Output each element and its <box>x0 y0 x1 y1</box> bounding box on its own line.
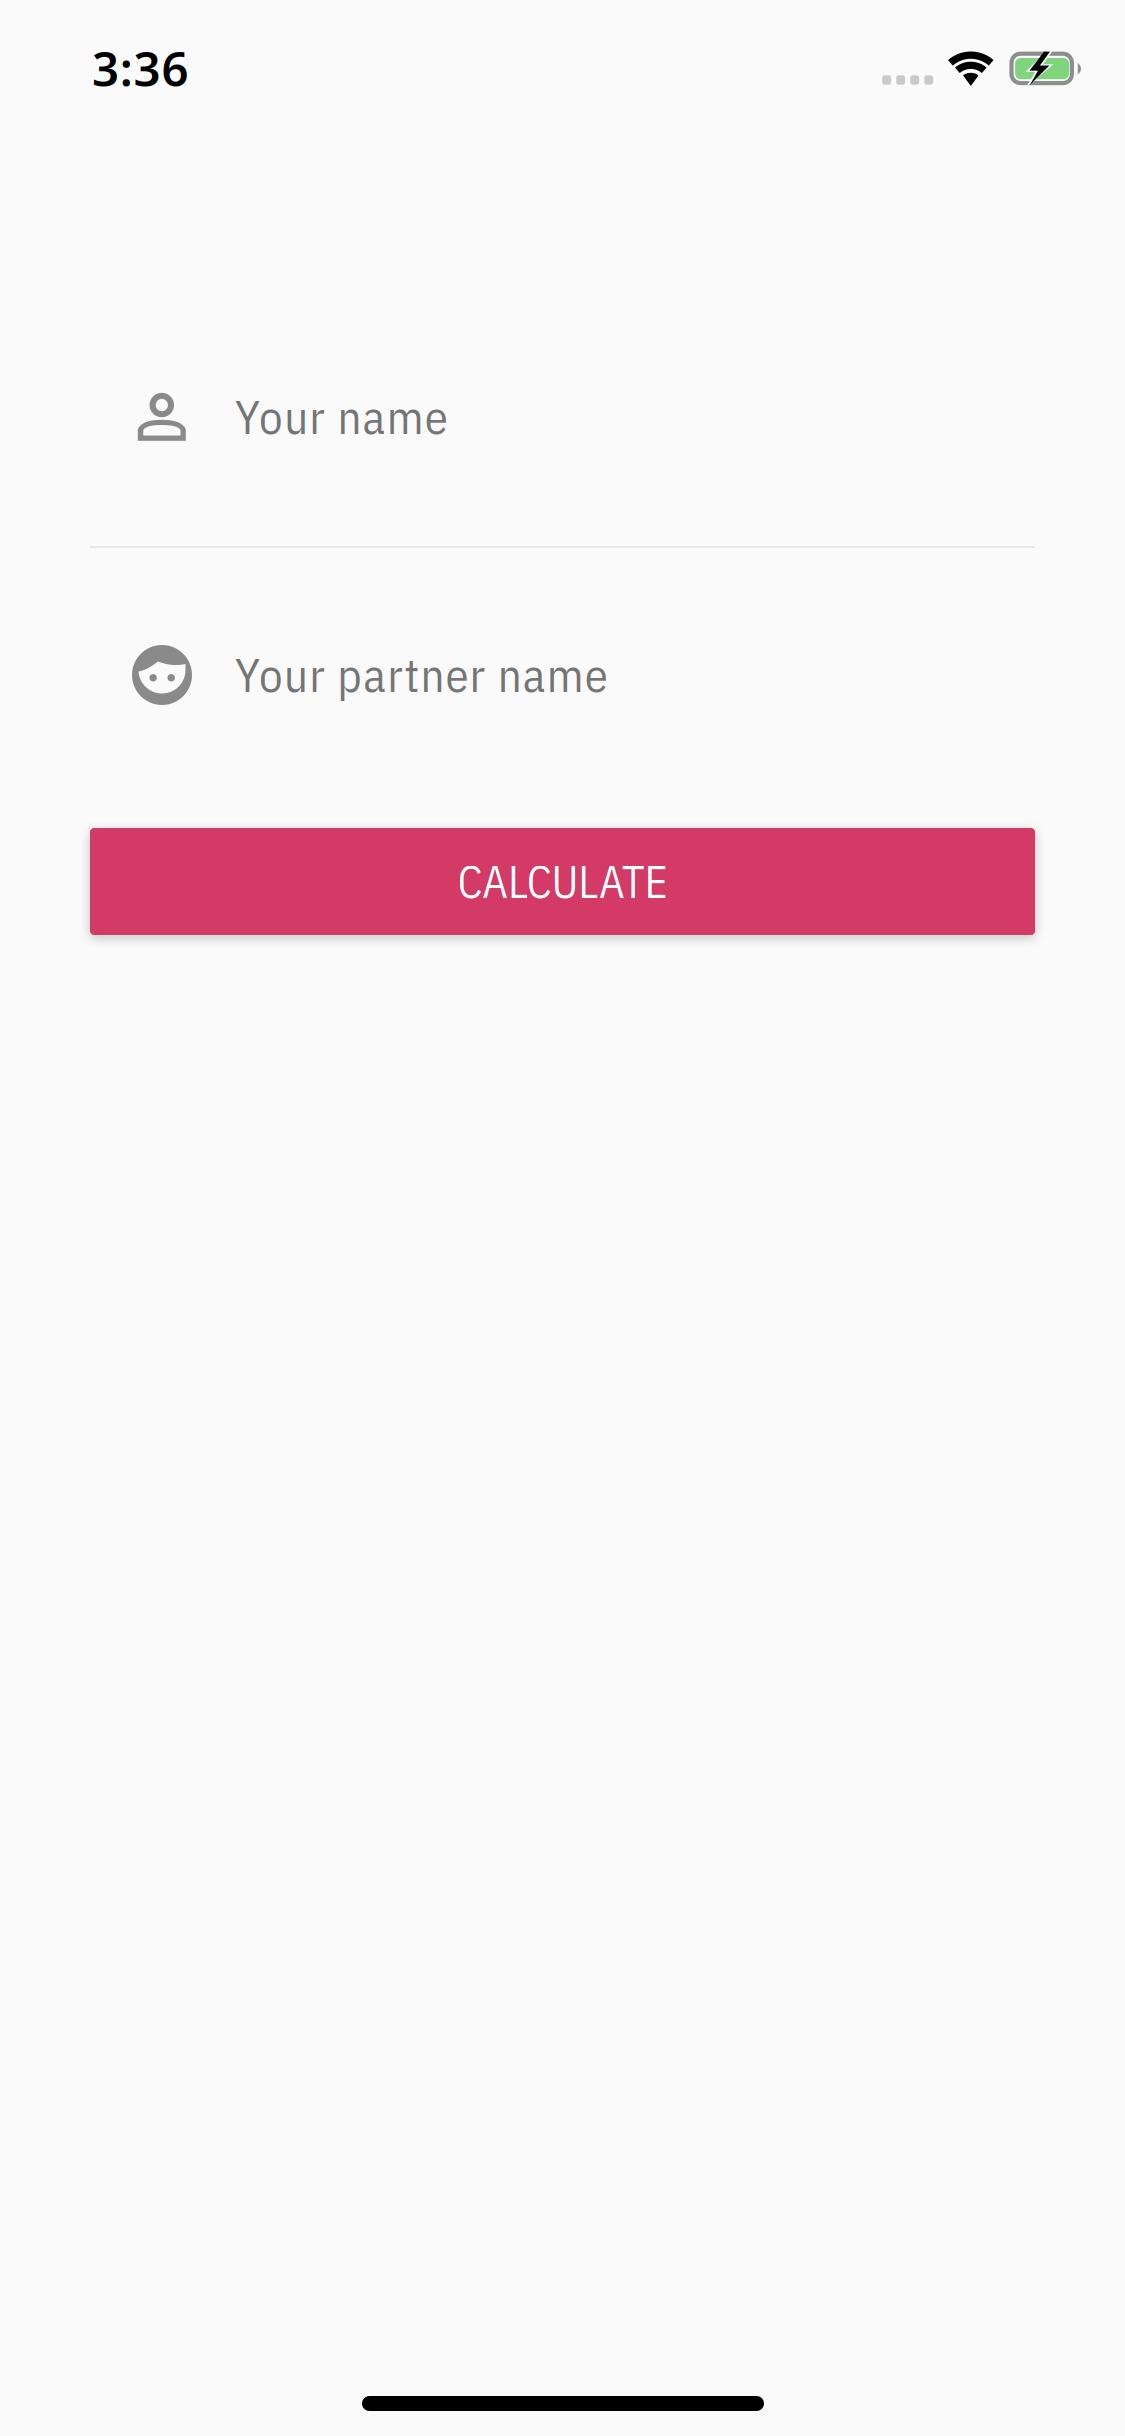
staticText: Your partner name <box>235 644 608 705</box>
button[interactable]: CALCULATE <box>90 828 1035 935</box>
button[interactable]: Your partner name <box>90 592 1035 782</box>
staticText: Your name <box>235 386 448 447</box>
button[interactable]: Your name <box>90 340 1035 546</box>
staticText: CALCULATE <box>457 853 667 910</box>
staticText: 3:36 <box>92 36 188 100</box>
